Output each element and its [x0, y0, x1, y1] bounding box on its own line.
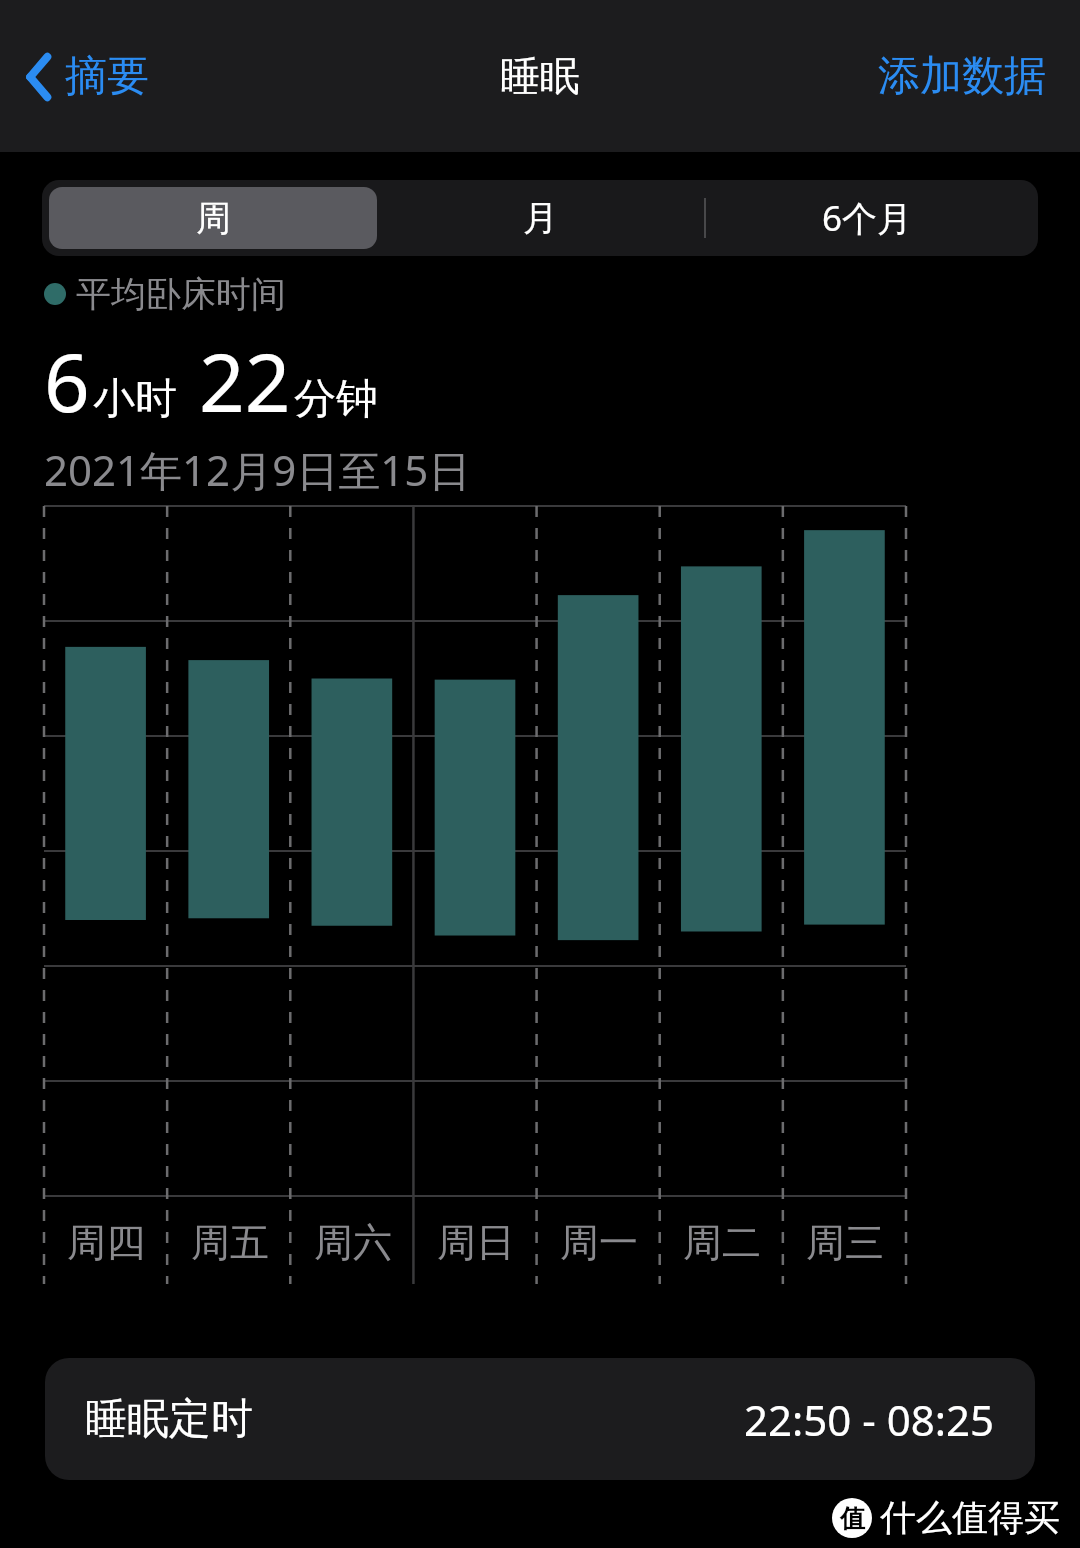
staticText: 月	[523, 196, 558, 240]
staticText: 睡眠	[500, 51, 580, 101]
staticText: 6个月	[822, 194, 913, 242]
staticText: 2021年12月9日至15日	[44, 441, 471, 498]
staticText: 22	[199, 326, 291, 435]
staticText: 22:50 - 08:25	[744, 1391, 995, 1448]
staticText: 摘要	[65, 50, 149, 103]
button[interactable]: 睡眠定时	[45, 1358, 1035, 1480]
staticText: 睡眠定时	[85, 1393, 253, 1446]
staticText: 值	[840, 1503, 865, 1534]
button[interactable]: 摘要	[20, 40, 155, 113]
staticText: 周六	[314, 1218, 392, 1267]
staticText: 周	[196, 196, 231, 240]
staticText: 小时	[93, 373, 177, 426]
staticText: 平均卧床时间	[76, 272, 286, 316]
staticText: 分钟	[294, 373, 378, 426]
staticText: 周三	[806, 1218, 884, 1267]
staticText: 6	[44, 326, 90, 435]
staticText: 什么值得买	[880, 1495, 1060, 1540]
staticText: 周一	[560, 1218, 638, 1267]
button[interactable]: 月	[377, 187, 704, 249]
button[interactable]: 添加数据	[878, 40, 1080, 113]
staticText: 周日	[437, 1218, 515, 1267]
staticText: 周五	[191, 1218, 269, 1267]
staticText: 周四	[67, 1218, 145, 1267]
button[interactable]: 周	[49, 187, 377, 249]
button[interactable]: 6个月	[704, 187, 1031, 249]
staticText: 周二	[683, 1218, 761, 1267]
